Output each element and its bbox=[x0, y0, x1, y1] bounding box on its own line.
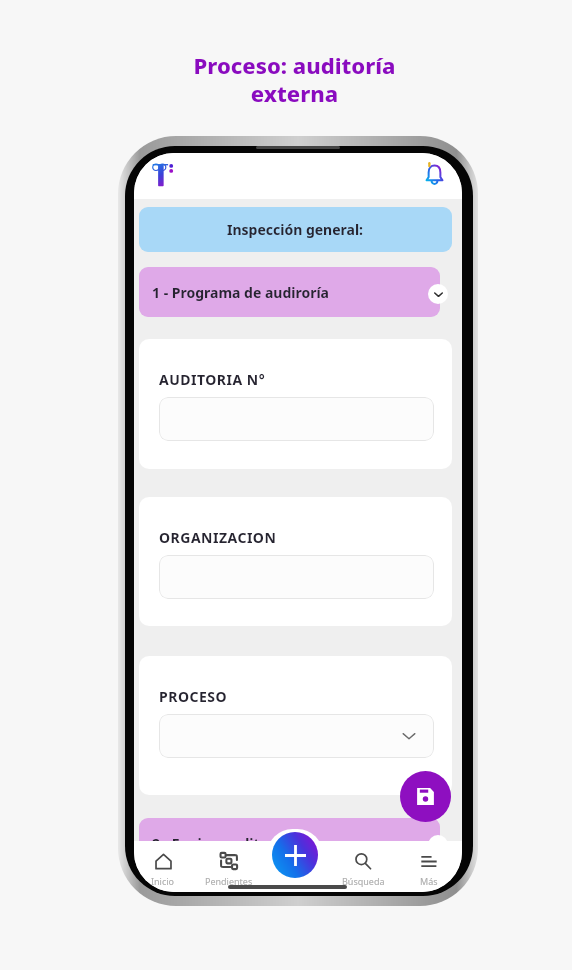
staticText: PROCESO bbox=[159, 687, 228, 706]
button[interactable]: Expand section bbox=[428, 835, 448, 855]
staticText: Proceso: auditoría externa bbox=[193, 50, 396, 108]
button[interactable]: App logo bbox=[146, 157, 182, 193]
button[interactable]: Inspección general: bbox=[139, 207, 452, 252]
staticText: 1 - Programa de audiroría bbox=[152, 283, 330, 302]
button[interactable]: Expand section bbox=[428, 284, 448, 304]
button[interactable]: 2 - Equipo auditor bbox=[139, 818, 440, 868]
staticText: AUDITORIA N° bbox=[159, 370, 266, 389]
staticText: Búsqueda bbox=[342, 875, 385, 887]
staticText: Inspección general: bbox=[227, 220, 364, 239]
staticText: Más bbox=[420, 875, 438, 887]
button[interactable]: Pendientes bbox=[199, 841, 259, 892]
button[interactable]: Notifications bbox=[419, 159, 449, 189]
staticText: Inicio bbox=[151, 875, 175, 887]
staticText: ORGANIZACION bbox=[159, 528, 277, 547]
button[interactable]: Inicio bbox=[134, 841, 193, 892]
button[interactable]: 1 - Programa de audiroría bbox=[139, 267, 440, 317]
button[interactable]: AUDITORIA N° bbox=[139, 339, 452, 469]
button[interactable]: PROCESO bbox=[139, 656, 452, 795]
button[interactable]: Save bbox=[400, 771, 451, 822]
button[interactable]: ORGANIZACION bbox=[139, 497, 452, 626]
staticText: 2 - Equipo auditor bbox=[152, 834, 275, 853]
button[interactable]: Más bbox=[399, 841, 459, 892]
staticText: Pendientes bbox=[205, 875, 253, 887]
button[interactable]: Add bbox=[272, 832, 318, 878]
button[interactable]: Búsqueda bbox=[333, 841, 393, 892]
